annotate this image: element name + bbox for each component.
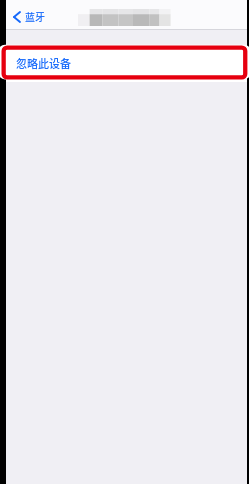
staticText: 忽略此设备 — [16, 55, 71, 71]
staticText: 蓝牙 — [25, 9, 45, 23]
button[interactable]: 忽略此设备 — [0, 46, 249, 82]
button[interactable]: Back to Bluetooth — [8, 0, 51, 29]
